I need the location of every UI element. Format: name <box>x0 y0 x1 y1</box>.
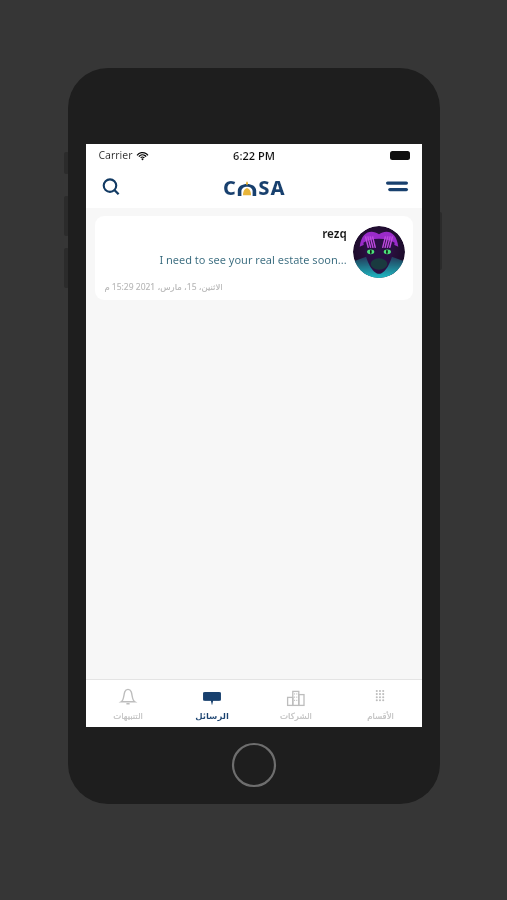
button[interactable]: Home <box>231 742 277 788</box>
button[interactable]: Search <box>94 170 128 204</box>
button[interactable]: rezq <box>95 216 413 300</box>
staticText: الأقسام <box>367 711 394 721</box>
button[interactable]: الرسائل <box>170 680 254 727</box>
staticText: rezq <box>322 226 347 242</box>
staticText: A <box>270 174 285 200</box>
staticText: Carrier <box>98 148 133 162</box>
button[interactable]: التنبيهات <box>86 680 170 727</box>
staticText: S <box>258 174 270 200</box>
staticText: I need to see your real estate soon... <box>159 252 347 267</box>
button[interactable]: C <box>223 174 285 200</box>
button[interactable]: الأقسام <box>338 680 422 727</box>
staticText: الرسائل <box>195 711 229 721</box>
staticText: C <box>223 174 236 200</box>
staticText: الاثنين، 15، مارس، 2021 15:29 م <box>104 281 223 293</box>
button[interactable]: الشركات <box>254 680 338 727</box>
staticText: الشركات <box>280 711 312 721</box>
button[interactable]: Menu <box>380 170 414 204</box>
staticText: التنبيهات <box>113 711 143 721</box>
staticText: 6:22 PM <box>233 148 275 163</box>
